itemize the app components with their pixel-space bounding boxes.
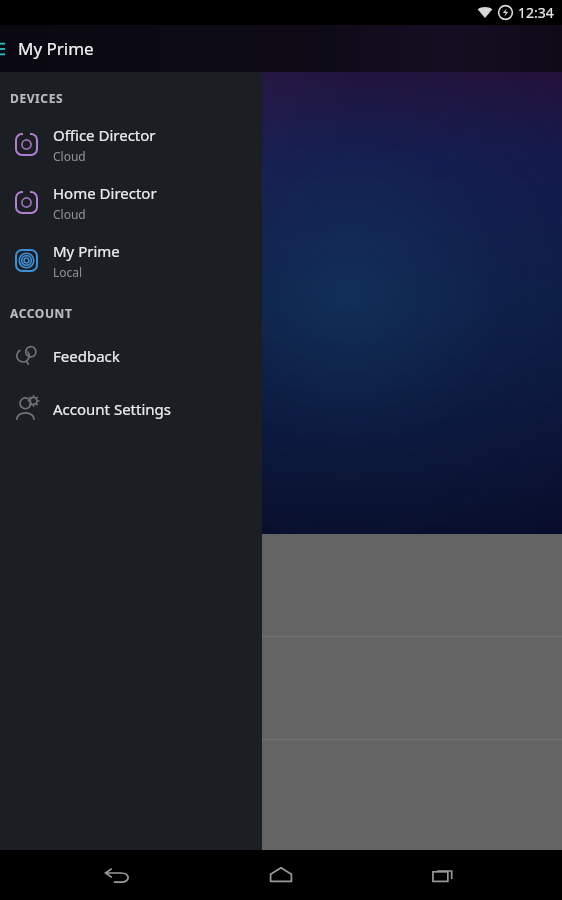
staticText: Cloud: [53, 206, 86, 222]
staticText: Local: [53, 264, 83, 280]
button[interactable]: Back: [73, 850, 163, 900]
staticText: Cloud: [53, 148, 86, 164]
staticText: DEVICES: [10, 90, 64, 106]
staticText: Feedback: [53, 346, 120, 366]
button[interactable]: My Prime: [0, 231, 262, 289]
button[interactable]: Home Director: [0, 173, 262, 231]
button[interactable]: Account Settings: [0, 382, 262, 435]
staticText: Account Settings: [53, 399, 171, 419]
button[interactable]: Logout: [0, 874, 130, 900]
staticText: My Prime: [53, 241, 120, 261]
staticText: Office Director: [53, 125, 156, 145]
staticText: My Prime: [18, 37, 94, 60]
staticText: Home Director: [53, 183, 157, 203]
staticText: ACCOUNT: [10, 305, 73, 321]
button[interactable]: Recent apps: [399, 850, 489, 900]
button[interactable]: Office Director: [0, 115, 262, 173]
button[interactable]: Open navigation drawer: [0, 25, 18, 72]
button[interactable]: Feedback: [0, 329, 262, 382]
button[interactable]: Home: [236, 850, 326, 900]
staticText: 12:34: [518, 3, 554, 22]
